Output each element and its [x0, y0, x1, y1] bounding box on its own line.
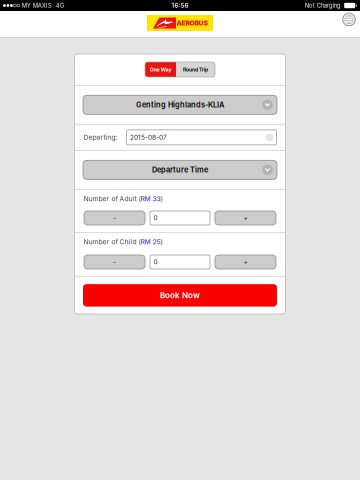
button[interactable]: Genting Highlands-KLIA	[83, 95, 277, 114]
staticText: Not Charging	[305, 2, 341, 9]
button[interactable]: One Way	[145, 62, 176, 77]
staticText: RM 25	[140, 238, 160, 246]
staticText: Number of Child (	[83, 238, 140, 246]
staticText: )	[160, 195, 162, 203]
staticText: 0	[153, 214, 157, 222]
staticText: 4G	[52, 2, 64, 9]
staticText: Book Now	[160, 290, 200, 300]
staticText: MY MAXIS	[20, 2, 52, 9]
button[interactable]: Departure Time	[83, 160, 277, 179]
staticText: 0	[153, 258, 157, 266]
staticText: 2015-08-07	[130, 133, 167, 141]
button[interactable]: Round Trip	[176, 62, 215, 77]
staticText: +	[243, 214, 247, 222]
staticText: +	[243, 258, 247, 266]
staticText: )	[160, 238, 162, 246]
staticText: Departure Time	[152, 165, 208, 174]
staticText: AEROBUS	[176, 19, 207, 27]
button[interactable]: +	[215, 255, 276, 269]
button[interactable]: -	[84, 255, 145, 269]
staticText: One Way	[149, 66, 171, 73]
staticText: -	[113, 258, 116, 266]
button[interactable]: +	[215, 211, 276, 225]
staticText: Round Trip	[183, 66, 208, 73]
staticText: Genting Highlands-KLIA	[136, 100, 224, 109]
staticText: -	[113, 214, 116, 222]
staticText: 16:56	[171, 2, 188, 9]
staticText: Departing:	[83, 133, 117, 141]
button[interactable]: 2015-08-07	[126, 130, 276, 145]
button[interactable]: -	[84, 211, 145, 225]
button[interactable]: Menu	[341, 11, 357, 27]
staticText: Number of Adult (	[83, 195, 140, 203]
button[interactable]: Book Now	[83, 284, 277, 307]
staticText: RM 33	[140, 195, 160, 203]
